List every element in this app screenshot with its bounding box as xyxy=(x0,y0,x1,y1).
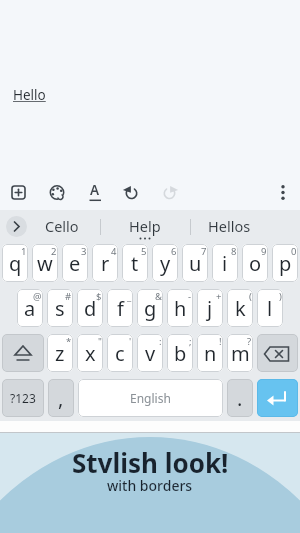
staticText: * xyxy=(66,335,72,348)
staticText: q xyxy=(9,250,22,277)
staticText: ; xyxy=(189,335,192,348)
button[interactable]: r xyxy=(92,244,118,282)
staticText: z xyxy=(55,340,65,367)
button[interactable] xyxy=(45,180,70,205)
button[interactable]: English xyxy=(78,379,223,417)
button[interactable]: h xyxy=(167,289,193,327)
button[interactable]: f xyxy=(107,289,133,327)
staticText: - xyxy=(188,290,192,303)
staticText: c xyxy=(115,340,125,367)
button[interactable] xyxy=(6,180,31,205)
button[interactable]: . xyxy=(227,379,253,417)
button[interactable]: p xyxy=(272,244,298,282)
staticText: p xyxy=(279,250,292,277)
staticText: b xyxy=(174,340,187,367)
staticText: y xyxy=(160,250,171,277)
button[interactable]: ?123 xyxy=(2,379,44,417)
staticText: 2 xyxy=(51,245,57,258)
staticText: u xyxy=(189,250,202,277)
button[interactable] xyxy=(257,379,298,417)
staticText: 0 xyxy=(291,245,297,258)
button[interactable]: j xyxy=(197,289,223,327)
button[interactable]: i xyxy=(212,244,238,282)
staticText: Hellos xyxy=(208,216,251,236)
staticText: 1 xyxy=(21,245,27,258)
staticText: i xyxy=(222,250,228,277)
staticText: r xyxy=(101,250,110,277)
button[interactable]: Hellos xyxy=(184,212,274,240)
button[interactable]: b xyxy=(167,334,193,372)
staticText: v xyxy=(145,340,156,367)
button[interactable]: q xyxy=(2,244,28,282)
button[interactable]: w xyxy=(32,244,58,282)
button[interactable] xyxy=(257,334,298,372)
button[interactable]: d xyxy=(77,289,103,327)
button[interactable]: a xyxy=(17,289,43,327)
staticText: o xyxy=(249,250,262,277)
staticText: ' xyxy=(129,335,132,348)
button[interactable]: s xyxy=(47,289,73,327)
staticText: d xyxy=(84,295,97,322)
staticText: . xyxy=(237,385,243,412)
staticText: 6 xyxy=(171,245,177,258)
staticText: + xyxy=(216,290,222,303)
staticText: : xyxy=(159,335,162,348)
staticText: ! xyxy=(219,335,222,348)
button[interactable]: k xyxy=(227,289,253,327)
button[interactable] xyxy=(6,216,27,237)
staticText: f xyxy=(117,295,124,322)
button[interactable]: l xyxy=(257,289,283,327)
staticText: 9 xyxy=(261,245,267,258)
staticText: l xyxy=(267,295,273,322)
button[interactable]: v xyxy=(137,334,163,372)
button[interactable]: Cello xyxy=(17,212,107,240)
staticText: 8 xyxy=(231,245,237,258)
staticText: , xyxy=(58,385,64,412)
button[interactable] xyxy=(83,180,108,205)
staticText: " xyxy=(98,335,102,348)
staticText: 3 xyxy=(81,245,87,258)
staticText: & xyxy=(155,290,162,303)
button[interactable]: , xyxy=(48,379,74,417)
button[interactable]: g xyxy=(137,289,163,327)
staticText: English xyxy=(130,390,171,406)
button[interactable]: z xyxy=(47,334,73,372)
staticText: g xyxy=(144,295,157,322)
staticText: h xyxy=(174,295,187,322)
button[interactable]: Help xyxy=(100,212,190,240)
button[interactable]: t xyxy=(122,244,148,282)
staticText: $ xyxy=(96,290,102,303)
staticText: with borders xyxy=(107,476,193,494)
staticText: m xyxy=(231,340,250,367)
button[interactable]: e xyxy=(62,244,88,282)
button[interactable] xyxy=(2,334,44,372)
staticText: t xyxy=(131,250,139,277)
staticText: A xyxy=(90,181,100,198)
button[interactable]: m xyxy=(227,334,253,372)
staticText: a xyxy=(24,295,36,322)
button[interactable] xyxy=(271,180,296,205)
staticText: Cello xyxy=(45,216,79,236)
staticText: ?123 xyxy=(10,390,36,406)
staticText: Hello xyxy=(13,86,46,104)
staticText: e xyxy=(69,250,81,277)
staticText: 4 xyxy=(111,245,117,258)
staticText: Stylish look! xyxy=(72,445,229,473)
staticText: s xyxy=(55,295,65,322)
button[interactable]: y xyxy=(152,244,178,282)
button[interactable]: x xyxy=(77,334,103,372)
button[interactable] xyxy=(158,180,183,205)
button[interactable]: n xyxy=(197,334,223,372)
staticText: w xyxy=(37,250,53,277)
staticText: j xyxy=(207,295,213,322)
staticText: Help xyxy=(129,216,161,236)
staticText: k xyxy=(235,295,246,322)
button[interactable] xyxy=(120,180,145,205)
staticText: ( xyxy=(249,290,252,303)
staticText: ) xyxy=(279,290,282,303)
staticText: # xyxy=(65,290,72,303)
staticText: @ xyxy=(33,290,42,303)
button[interactable]: u xyxy=(182,244,208,282)
button[interactable]: o xyxy=(242,244,268,282)
button[interactable]: c xyxy=(107,334,133,372)
